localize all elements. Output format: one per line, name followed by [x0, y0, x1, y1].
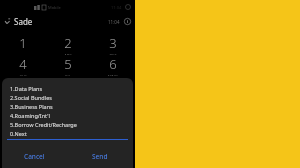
- button[interactable]: 2: [45, 34, 90, 55]
- staticText: 3: [109, 34, 117, 52]
- staticText: DEF: [109, 53, 117, 55]
- button[interactable]: Active call: [0, 13, 135, 30]
- staticText: 3.Business Plans: [10, 103, 53, 110]
- staticText: 4.Roaming/Int'l: [10, 112, 50, 119]
- staticText: GHI: [19, 74, 27, 76]
- staticText: 11:04: [108, 19, 120, 25]
- staticText: 4: [19, 55, 27, 73]
- staticText: 6: [109, 55, 117, 73]
- button[interactable]: 5: [45, 55, 90, 76]
- button[interactable]: Call info: [124, 18, 131, 25]
- staticText: 2.Social Bundles: [10, 94, 52, 101]
- button[interactable]: 1: [0, 34, 45, 55]
- staticText: Sade: [14, 16, 33, 27]
- other: Active call: [4, 18, 11, 25]
- staticText: 11:04: [111, 5, 122, 10]
- staticText: Cancel: [24, 152, 45, 161]
- button[interactable]: Send: [67, 152, 133, 161]
- staticText: Mobile: [48, 5, 61, 10]
- button[interactable]: 4: [0, 55, 45, 76]
- staticText: JKL: [65, 74, 71, 76]
- staticText: ABC: [64, 53, 72, 55]
- staticText: 5.Borrow Credit/Recharge: [10, 121, 77, 128]
- staticText: 2: [64, 34, 72, 52]
- staticText: 0.Next: [10, 130, 27, 137]
- staticText: 1: [19, 34, 27, 52]
- button[interactable]: Cancel: [2, 152, 67, 161]
- staticText: Send: [92, 152, 108, 161]
- staticText: 5: [64, 55, 72, 73]
- staticText: MNO: [108, 74, 118, 76]
- button[interactable]: 3: [90, 34, 135, 55]
- staticText: 1.Data Plans: [10, 85, 43, 92]
- button[interactable]: 6: [90, 55, 135, 76]
